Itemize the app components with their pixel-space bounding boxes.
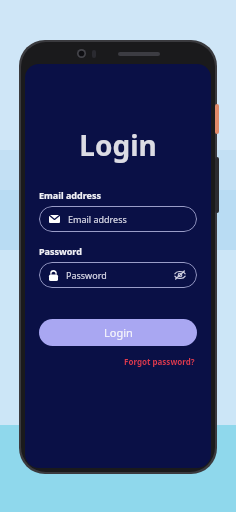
staticText: Email address (68, 213, 127, 225)
button[interactable]: Email address (39, 206, 197, 232)
staticText: Password (66, 269, 107, 281)
staticText: Email address (39, 189, 101, 201)
button[interactable]: Password (39, 262, 197, 288)
button[interactable]: Show password (173, 268, 187, 282)
button[interactable]: Forgot password? (122, 354, 197, 369)
button[interactable]: Login (39, 319, 197, 346)
staticText: Login (39, 126, 197, 164)
staticText: Password (39, 245, 82, 257)
staticText: Login (104, 325, 133, 340)
